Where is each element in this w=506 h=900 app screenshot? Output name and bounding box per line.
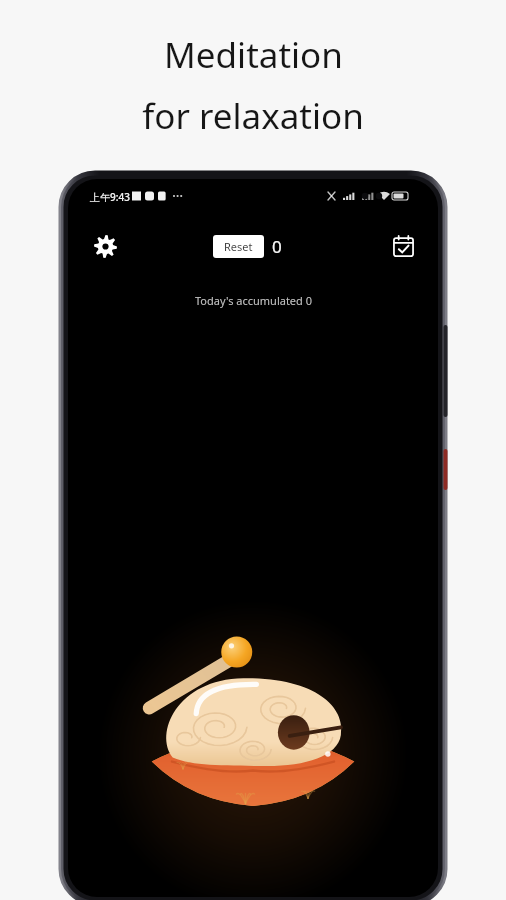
staticText: Reset bbox=[224, 239, 253, 254]
staticText: Meditation bbox=[164, 31, 343, 79]
button[interactable]: Wooden fish — tap to meditate bbox=[128, 623, 378, 823]
button[interactable]: Reset bbox=[213, 235, 264, 258]
staticText: Today's accumulated 0 bbox=[195, 293, 312, 308]
button[interactable]: Records calendar bbox=[382, 225, 424, 267]
button[interactable]: Settings bbox=[84, 225, 126, 267]
staticText: 上午9:43 bbox=[90, 190, 130, 204]
staticText: for relaxation bbox=[142, 92, 364, 140]
staticText: 0 bbox=[272, 235, 282, 258]
